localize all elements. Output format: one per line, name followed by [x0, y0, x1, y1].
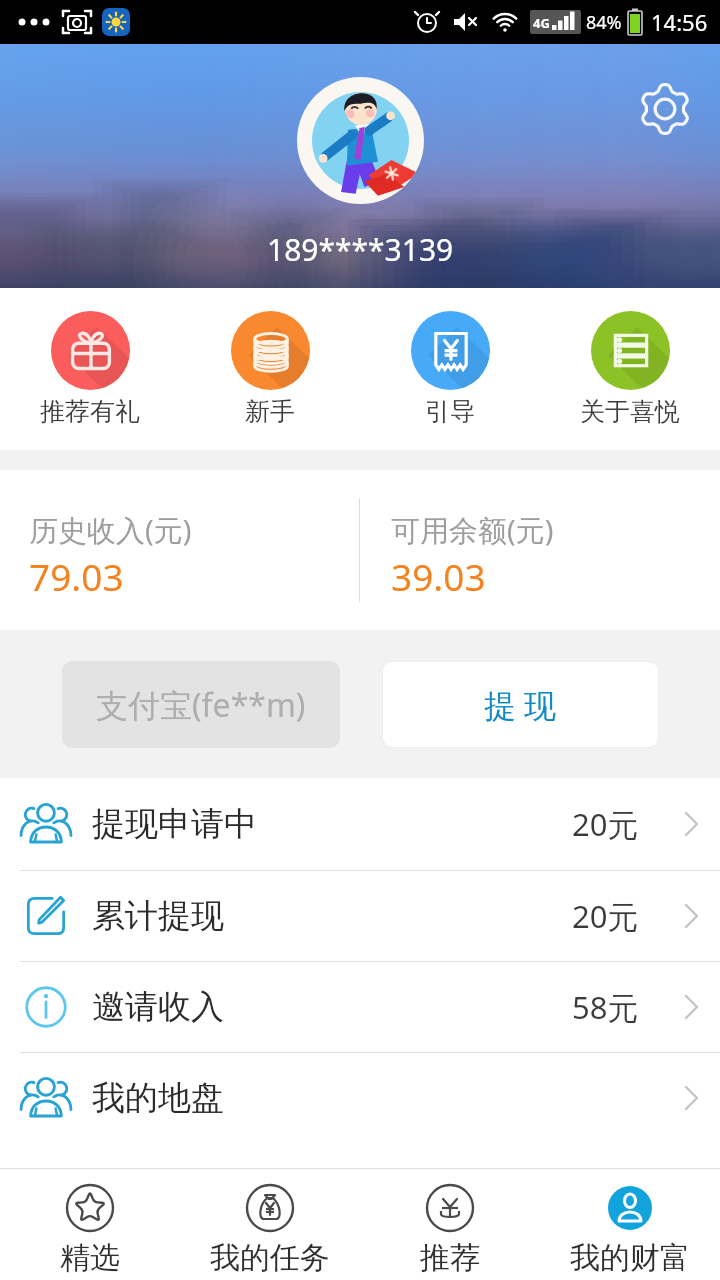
staticText: 79.03 — [29, 551, 124, 601]
button[interactable]: 我的任务 — [180, 1169, 360, 1280]
staticText: 我的财富 — [570, 1239, 690, 1277]
button[interactable]: Settings — [636, 80, 694, 138]
staticText: 提现申请中 — [92, 803, 257, 845]
staticText: 可用余额(元) — [391, 510, 554, 550]
staticText: 20元 — [572, 803, 639, 845]
staticText: 20元 — [572, 895, 639, 937]
button[interactable]: 推荐 — [360, 1169, 540, 1280]
staticText: 58元 — [572, 986, 639, 1028]
staticText: 历史收入(元) — [29, 510, 192, 550]
button[interactable]: 提 现 — [383, 662, 658, 747]
button[interactable]: 精选 — [0, 1169, 180, 1280]
button[interactable]: 我的地盘 — [0, 1053, 720, 1143]
staticText: 引导 — [425, 396, 475, 427]
button[interactable]: 支付宝(fe**m) — [62, 661, 340, 748]
staticText: 邀请收入 — [92, 986, 224, 1028]
staticText: 我的地盘 — [92, 1077, 224, 1119]
staticText: 推荐有礼 — [40, 396, 140, 427]
staticText: 推荐 — [420, 1239, 480, 1277]
button[interactable]: 新手 — [180, 288, 360, 450]
staticText: 新手 — [245, 396, 295, 427]
staticText: 关于喜悦 — [580, 396, 680, 427]
staticText: 支付宝(fe**m) — [96, 683, 306, 727]
button[interactable]: 累计提现 — [0, 871, 720, 961]
staticText: 提 现 — [484, 683, 557, 727]
staticText: 我的任务 — [210, 1239, 330, 1277]
staticText: 精选 — [60, 1239, 120, 1277]
button[interactable]: 引导 — [360, 288, 540, 450]
button[interactable]: 推荐有礼 — [0, 288, 180, 450]
staticText: 4G — [533, 14, 550, 32]
button[interactable]: 我的财富 — [540, 1169, 720, 1280]
staticText: 14:56 — [651, 7, 708, 37]
staticText: 84% — [586, 10, 622, 35]
staticText: 39.03 — [391, 551, 486, 601]
button[interactable]: 关于喜悦 — [540, 288, 720, 450]
button[interactable]: 邀请收入 — [0, 962, 720, 1052]
staticText: 189****3139 — [267, 229, 454, 270]
staticText: 累计提现 — [92, 895, 224, 937]
button[interactable]: 提现申请中 — [0, 778, 720, 870]
